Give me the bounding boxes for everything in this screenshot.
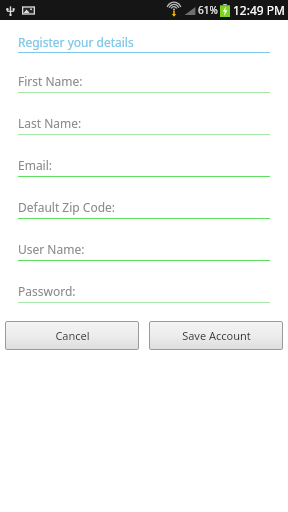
button[interactable]: Cancel bbox=[5, 321, 139, 350]
other: Mobile signal bbox=[184, 5, 196, 16]
staticText: Email: bbox=[18, 157, 53, 173]
staticText: 12:49 PM bbox=[233, 2, 285, 18]
other: USB connected bbox=[4, 4, 17, 17]
other: Wi-Fi bbox=[167, 3, 181, 17]
button[interactable]: First Name: bbox=[18, 73, 270, 93]
button[interactable]: Password: bbox=[18, 283, 270, 303]
button[interactable]: User Name: bbox=[18, 241, 270, 261]
other: Battery charging bbox=[220, 4, 230, 17]
button[interactable]: Email: bbox=[18, 157, 270, 177]
button[interactable]: Default Zip Code: bbox=[18, 199, 270, 219]
button[interactable]: Last Name: bbox=[18, 115, 270, 135]
button[interactable]: Save Account bbox=[149, 321, 283, 350]
staticText: First Name: bbox=[18, 73, 83, 89]
staticText: Default Zip Code: bbox=[18, 199, 116, 215]
staticText: Last Name: bbox=[18, 115, 82, 131]
other: Screenshot captured bbox=[22, 4, 35, 17]
staticText: Register your details bbox=[18, 34, 134, 50]
staticText: Cancel bbox=[55, 328, 90, 343]
staticText: User Name: bbox=[18, 241, 85, 257]
staticText: Save Account bbox=[182, 328, 251, 343]
staticText: Password: bbox=[18, 283, 76, 299]
staticText: 61% bbox=[198, 3, 218, 17]
